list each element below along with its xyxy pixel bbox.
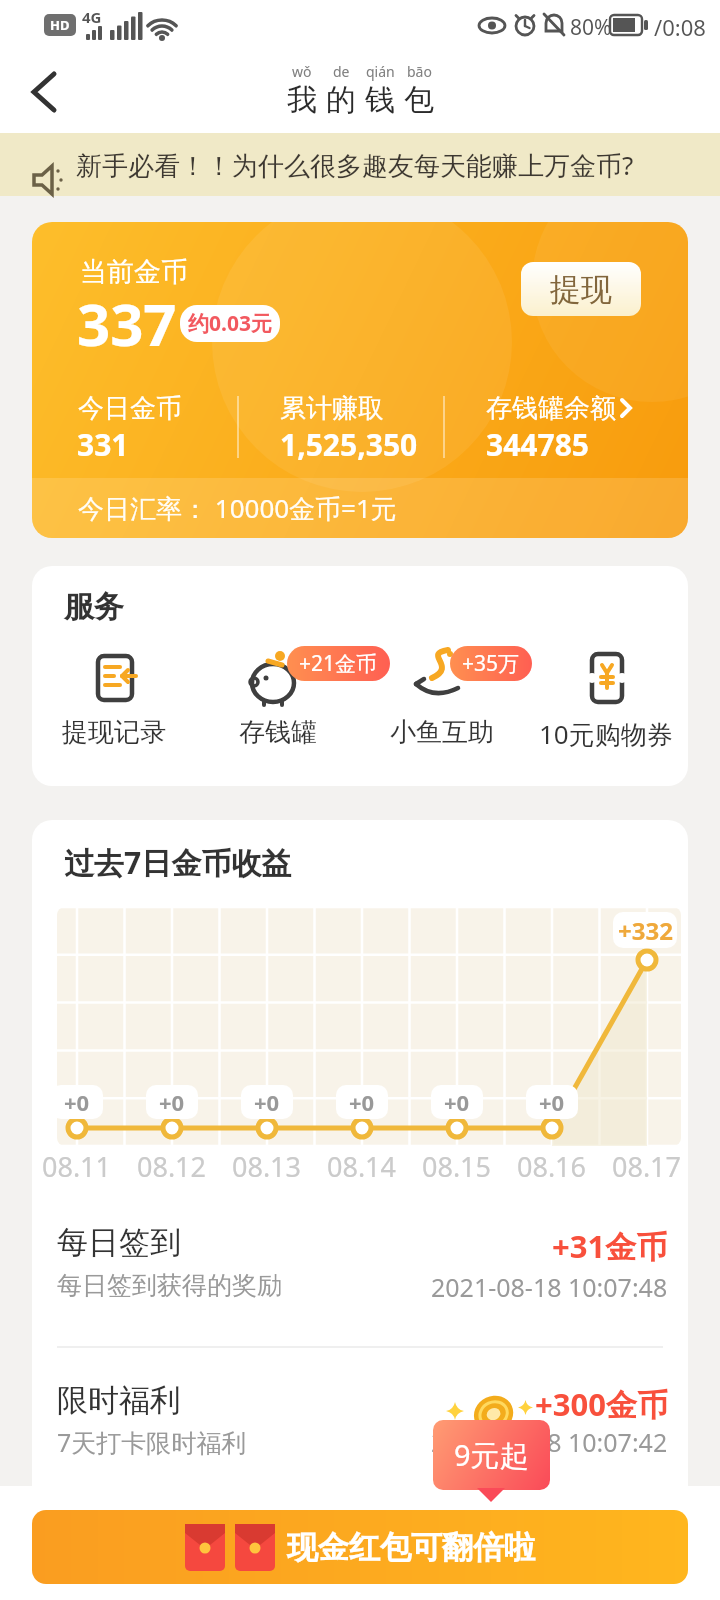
staticText: bāo [407,62,432,81]
staticText: 存钱罐余额 [486,392,616,425]
staticText: 9元起 [454,1435,529,1475]
staticText: 2021-08-18 10:07:42 [431,1425,668,1459]
staticText: 08.17 [612,1148,682,1185]
staticText: 新手必看！！为什么很多趣友每天能赚上万金币? [76,147,634,183]
staticText: +0 [254,1087,280,1117]
staticText: de [333,62,350,81]
staticText: 提现 [550,270,612,309]
staticText: 4G [82,7,102,27]
button[interactable]: 限时福利 [32,1374,688,1499]
staticText: /0:08 [654,12,706,42]
staticText: +0 [539,1087,565,1117]
staticText: 服务 [64,588,124,626]
button[interactable]: 提现记录 [32,650,196,762]
staticText: 我 [287,81,317,119]
button[interactable]: 每日签到 [32,1220,688,1345]
staticText: 08.16 [517,1148,587,1185]
staticText: 10元购物券 [539,716,673,752]
staticText: +0 [349,1087,375,1117]
staticText: +21金币 [299,649,378,678]
staticText: 今日汇率： 10000金币=1元 [78,490,397,526]
staticText: 限时福利 [57,1381,181,1420]
staticText: 包 [404,81,434,119]
staticText: 08.13 [232,1148,302,1185]
staticText: 08.15 [422,1148,492,1185]
button[interactable]: 现金红包可翻倍啦 [32,1510,688,1584]
staticText: +0 [444,1087,470,1117]
staticText: +31金币 [552,1225,668,1267]
staticText: 钱 [365,81,395,119]
button[interactable]: 小鱼互助 [360,650,524,762]
staticText: 今日金币 [78,392,182,425]
staticText: 当前金币 [80,255,188,289]
staticText: 08.14 [327,1148,397,1185]
staticText: 小鱼互助 [390,716,494,749]
staticText: 1,525,350 [280,424,418,465]
staticText: +332 [618,914,673,947]
button[interactable]: 提现 [521,262,641,316]
staticText: 每日签到获得的奖励 [57,1270,282,1301]
staticText: 过去7日金币收益 [64,842,292,883]
staticText: wǒ [292,62,312,81]
staticText: HD [50,16,70,34]
staticText: 344785 [486,424,589,465]
button[interactable]: 9元起 [433,1420,550,1490]
staticText: 331 [77,424,129,465]
staticText: +0 [159,1087,185,1117]
staticText: 累计赚取 [280,392,384,425]
staticText: 现金红包可翻倍啦 [287,1528,535,1567]
button[interactable] [20,68,72,116]
staticText: +300金币 [535,1383,668,1425]
staticText: +0 [64,1087,90,1117]
staticText: 80% [570,13,612,42]
staticText: +35万 [462,649,520,678]
staticText: 7天打卡限时福利 [57,1425,247,1459]
staticText: qián [366,62,395,81]
staticText: 08.12 [137,1148,207,1185]
staticText: 337 [77,284,177,363]
staticText: 的 [326,81,356,119]
button[interactable]: 新手必看！！为什么很多趣友每天能赚上万金币? [0,133,720,196]
staticText: 每日签到 [57,1223,181,1262]
button[interactable]: 10元购物券 [524,650,688,762]
staticText: 2021-08-18 10:07:48 [431,1270,668,1304]
button[interactable]: 存钱罐 [196,650,360,762]
staticText: 提现记录 [62,716,166,749]
staticText: 08.11 [42,1148,112,1185]
staticText: 存钱罐 [239,716,317,749]
staticText: 约0.03元 [188,309,272,338]
